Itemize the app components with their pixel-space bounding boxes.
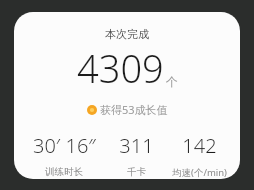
staticText: 个 — [166, 74, 178, 89]
staticText: 本次完成 — [105, 27, 149, 41]
button[interactable]: 30′ 16″ — [20, 132, 108, 178]
staticText: 311 — [119, 132, 154, 159]
other: Growth points — [87, 105, 97, 115]
staticText: 均速(个/min) — [172, 166, 227, 179]
button[interactable]: 本次完成 — [14, 12, 240, 179]
button[interactable]: Growth points — [87, 102, 168, 117]
button[interactable]: 142 — [164, 132, 234, 179]
staticText: 千卡 — [127, 166, 146, 178]
staticText: 训练时长 — [45, 166, 83, 178]
staticText: 30′ 16″ — [33, 132, 96, 159]
staticText: 获得53成长值 — [100, 102, 168, 117]
staticText: 142 — [182, 132, 217, 159]
staticText: 4309 — [77, 42, 164, 94]
button[interactable]: 311 — [108, 132, 164, 178]
